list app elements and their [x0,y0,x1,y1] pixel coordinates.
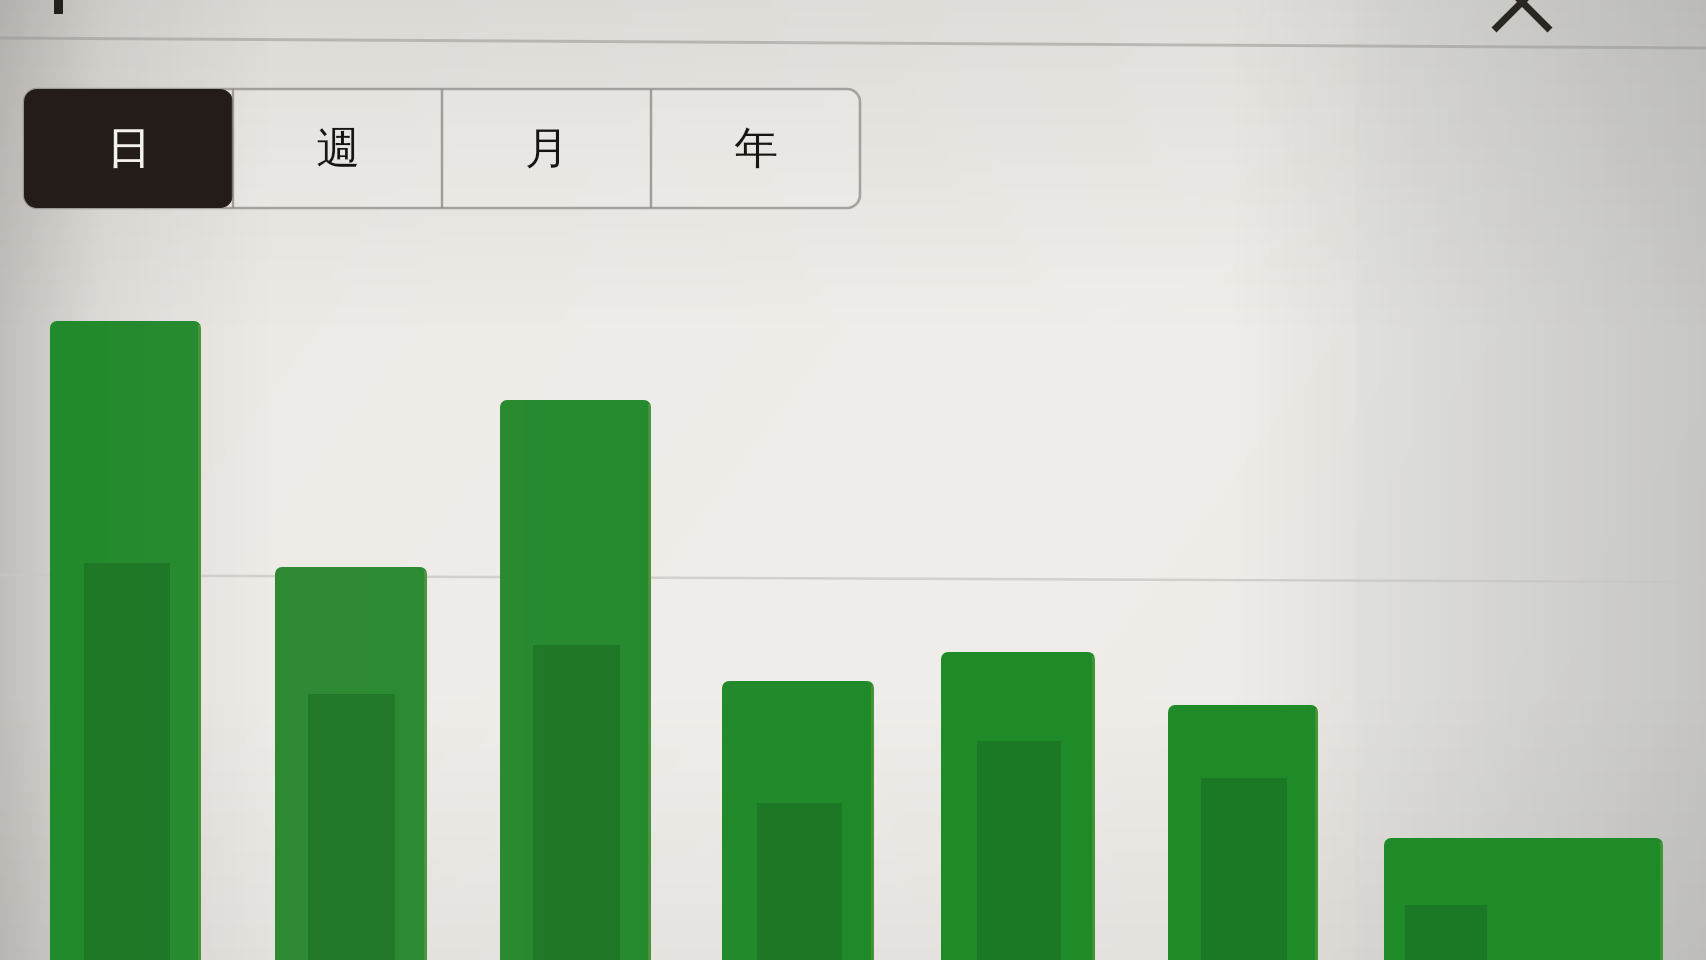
staticText: 年 [734,121,778,176]
button[interactable]: 年 [651,89,860,208]
button[interactable]: 週 [233,89,442,208]
staticText: 月 [525,121,569,176]
button[interactable]: Close [1466,0,1578,58]
button[interactable]: 日 [24,89,233,208]
staticText: 週 [316,121,360,176]
staticText: 日 [107,121,151,176]
button[interactable]: 月 [442,89,651,208]
